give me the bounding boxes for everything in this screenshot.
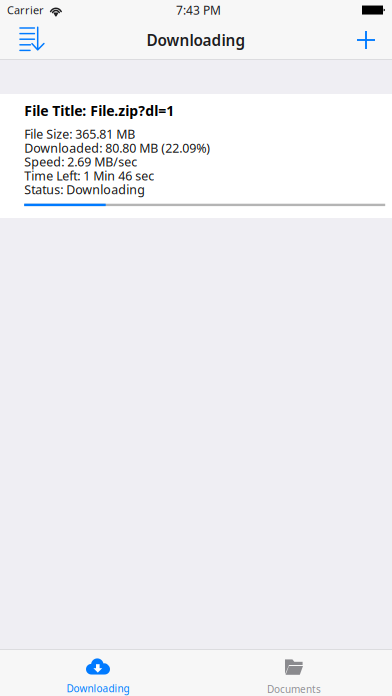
staticText: Time Left: 1 Min 46 sec [24, 167, 154, 184]
staticText: Documents [267, 682, 321, 696]
button[interactable]: Add download [343, 20, 392, 60]
staticText: 7:43 PM [176, 2, 221, 18]
staticText: Downloading [66, 681, 129, 695]
staticText: Downloading [146, 30, 245, 50]
staticText: File Size: 365.81 MB [24, 126, 135, 142]
button[interactable]: Sort downloads [0, 20, 59, 60]
staticText: File Title: File.zip?dl=1 [24, 101, 174, 120]
staticText: Carrier [7, 3, 44, 17]
button[interactable]: Downloading [0, 649, 196, 696]
button[interactable]: Documents [196, 649, 392, 696]
staticText: Downloaded: 80.80 MB (22.09%) [24, 139, 210, 156]
staticText: Speed: 2.69 MB/sec [24, 153, 137, 170]
staticText: Status: Downloading [24, 181, 145, 198]
